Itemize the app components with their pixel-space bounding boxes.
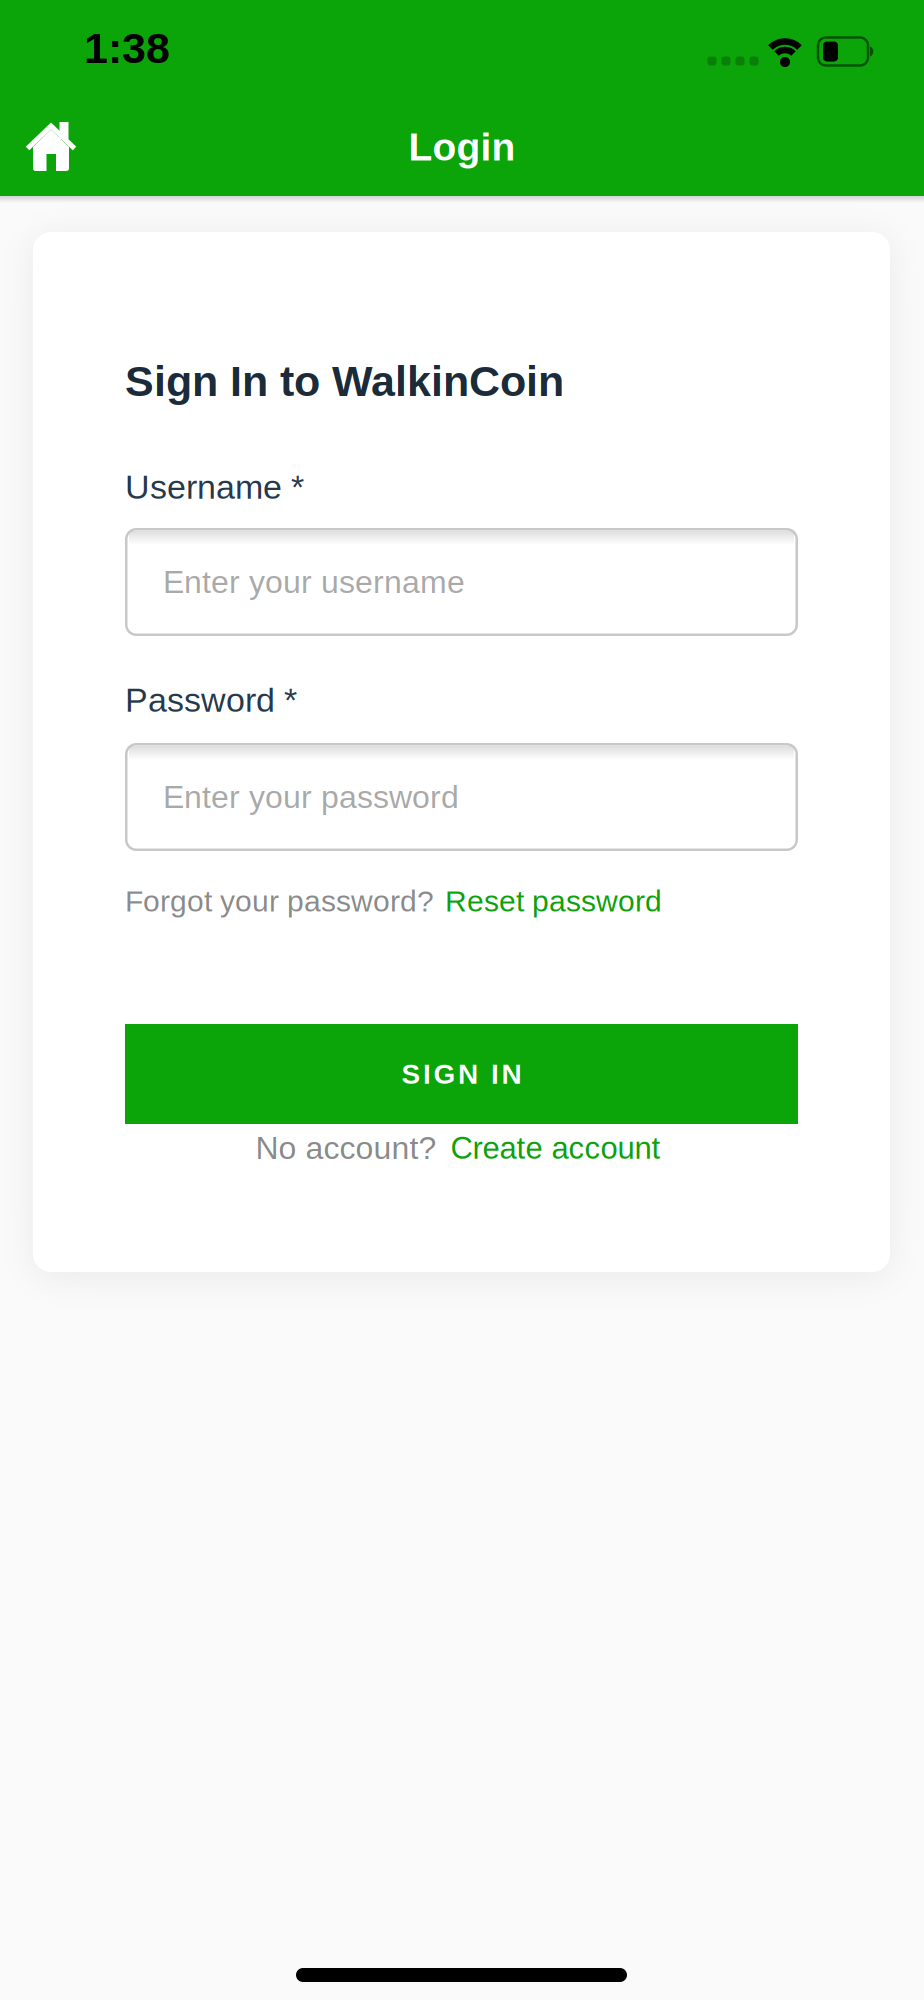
button[interactable]: Username xyxy=(125,528,798,636)
staticText: Reset password xyxy=(445,884,662,918)
staticText: No account? xyxy=(255,1130,436,1166)
staticText: Login xyxy=(408,125,515,169)
staticText: 1:38 xyxy=(84,24,170,72)
staticText: Username * xyxy=(125,468,304,506)
staticText: Forgot your password? xyxy=(125,884,434,918)
staticText: Create account xyxy=(450,1131,660,1165)
button[interactable]: Home xyxy=(25,119,77,173)
staticText: Password * xyxy=(125,681,297,719)
staticText: Enter your username xyxy=(163,564,465,600)
staticText: Sign In to WalkinCoin xyxy=(125,357,564,405)
staticText: SIGN IN xyxy=(401,1058,521,1090)
staticText: Enter your password xyxy=(163,779,459,815)
button[interactable]: SIGN IN xyxy=(125,1024,798,1124)
button[interactable]: Create account xyxy=(450,1131,660,1165)
button[interactable]: Password xyxy=(125,743,798,851)
button[interactable]: Reset password xyxy=(445,884,662,918)
